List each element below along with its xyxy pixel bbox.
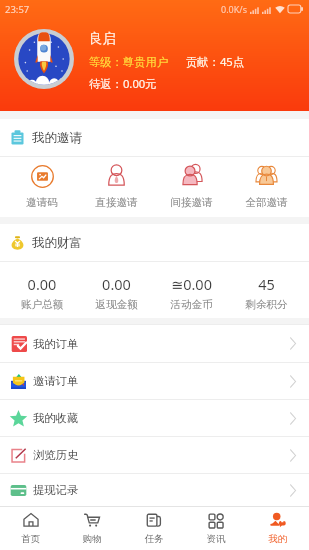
staticText: 邀请订单: [33, 374, 79, 388]
staticText: 返现金额: [79, 298, 154, 311]
staticText: 我的订单: [33, 337, 79, 351]
staticText: 0.00: [5, 274, 79, 294]
staticText: 剩余积分: [229, 298, 304, 311]
button[interactable]: 0.00: [5, 262, 79, 318]
staticText: 账户总额: [5, 298, 79, 311]
staticText: 间接邀请: [154, 196, 229, 209]
button[interactable]: 45: [229, 262, 304, 318]
button[interactable]: 购物: [61, 507, 123, 550]
staticText: 我的: [247, 533, 309, 545]
staticText: 首页: [0, 533, 61, 545]
button[interactable]: 提现记录: [0, 474, 309, 506]
staticText: 0.0K/s: [221, 3, 247, 15]
staticText: 23:57: [5, 3, 30, 16]
button[interactable]: 首页: [0, 507, 61, 550]
button[interactable]: 邀请订单: [0, 363, 309, 399]
button[interactable]: 直接邀请: [79, 157, 154, 217]
staticText: 活动金币: [154, 298, 229, 311]
button[interactable]: 任务: [123, 507, 185, 550]
staticText: 资讯: [185, 533, 247, 545]
button[interactable]: 我的: [247, 507, 309, 550]
button[interactable]: 间接邀请: [154, 157, 229, 217]
staticText: 待返：0.00元: [89, 76, 157, 91]
button[interactable]: ≅0.00: [154, 262, 229, 318]
staticText: 提现记录: [33, 483, 79, 497]
staticText: 0.00: [79, 274, 154, 294]
staticText: ≅0.00: [154, 274, 229, 294]
staticText: 邀请码: [5, 196, 79, 209]
staticText: 我的财富: [32, 235, 82, 251]
button[interactable]: 我的收藏: [0, 400, 309, 436]
staticText: 贡献：45点: [186, 54, 245, 69]
button[interactable]: 我的订单: [0, 325, 309, 362]
staticText: 任务: [123, 533, 185, 545]
staticText: 购物: [61, 533, 123, 545]
staticText: 我的邀请: [32, 130, 82, 146]
button[interactable]: 浏览历史: [0, 437, 309, 473]
staticText: 等级：尊贵用户: [89, 55, 169, 69]
staticText: 全部邀请: [229, 196, 304, 209]
button[interactable]: 全部邀请: [229, 157, 304, 217]
staticText: 我的收藏: [33, 411, 79, 425]
button[interactable]: 0.00: [79, 262, 154, 318]
staticText: 45: [229, 274, 304, 294]
staticText: 良启: [89, 30, 116, 47]
staticText: 直接邀请: [79, 196, 154, 209]
staticText: 浏览历史: [33, 448, 79, 462]
button[interactable]: 邀请码: [5, 157, 79, 217]
button[interactable]: 资讯: [185, 507, 247, 550]
